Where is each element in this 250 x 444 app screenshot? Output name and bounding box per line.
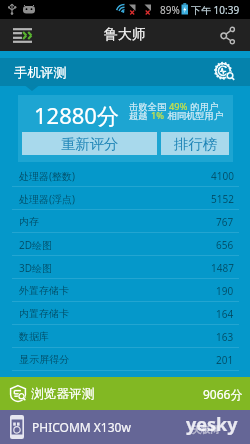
staticText: 排行榜 — [174, 135, 217, 153]
staticText: 内置存储卡 — [19, 307, 69, 320]
staticText: 外置存储卡 — [19, 284, 69, 297]
button[interactable]: 排行榜 — [161, 132, 229, 155]
staticText: 相同机型用户 — [165, 109, 224, 122]
staticText: yesky — [186, 412, 238, 437]
staticText: 2D绘图 — [19, 238, 53, 252]
staticText: 数据库 — [19, 330, 49, 343]
staticText: 浏览器评测 — [31, 386, 95, 402]
staticText: 手机评测 — [14, 64, 67, 81]
button[interactable]: 处理器(整数) — [0, 164, 250, 187]
staticText: 超越 — [129, 109, 151, 122]
staticText: 显示屏得分 — [19, 353, 69, 366]
staticText: 1487 — [211, 261, 234, 275]
staticText: 处理器(整数) — [19, 169, 75, 183]
staticText: 下午 10:39 — [191, 3, 240, 17]
staticText: 163 — [216, 330, 234, 344]
button[interactable]: 浏览器评测 — [0, 377, 250, 410]
staticText: 天极网 — [192, 424, 219, 435]
staticText: 9066分 — [203, 386, 243, 402]
button[interactable]: Run benchmark — [214, 62, 234, 82]
button[interactable]: 数据库 — [0, 325, 250, 348]
staticText: 4100 — [211, 169, 234, 183]
button[interactable]: 显示屏得分 — [0, 348, 250, 371]
button[interactable]: 3D绘图 — [0, 256, 250, 279]
staticText: 656 — [216, 238, 234, 252]
button[interactable]: 重新评分 — [22, 132, 157, 155]
staticText: 的用户 — [188, 100, 219, 113]
staticText: 49% — [169, 100, 188, 113]
button[interactable]: 处理器(浮点) — [0, 187, 250, 210]
button[interactable]: 内置存储卡 — [0, 302, 250, 325]
staticText: 重新评分 — [61, 135, 119, 153]
button[interactable]: Open navigation menu — [0, 19, 45, 51]
staticText: 190 — [216, 284, 234, 298]
staticText: 击败全国 — [129, 100, 169, 113]
staticText: 3D绘图 — [19, 261, 53, 275]
staticText: 12880分 — [34, 100, 119, 130]
staticText: 767 — [216, 215, 234, 229]
button[interactable]: Share — [210, 19, 250, 51]
staticText: 1% — [151, 109, 165, 122]
staticText: 5152 — [211, 192, 234, 206]
staticText: 处理器(浮点) — [19, 192, 75, 206]
button[interactable]: 外置存储卡 — [0, 279, 250, 302]
staticText: 201 — [216, 353, 234, 367]
button[interactable]: 内存 — [0, 210, 250, 233]
staticText: PHICOMM X130w — [32, 419, 131, 435]
staticText: 89% — [160, 3, 180, 17]
button[interactable]: 2D绘图 — [0, 233, 250, 256]
staticText: 内存 — [19, 215, 39, 228]
staticText: 164 — [216, 307, 234, 321]
staticText: 鲁大师 — [104, 26, 146, 44]
